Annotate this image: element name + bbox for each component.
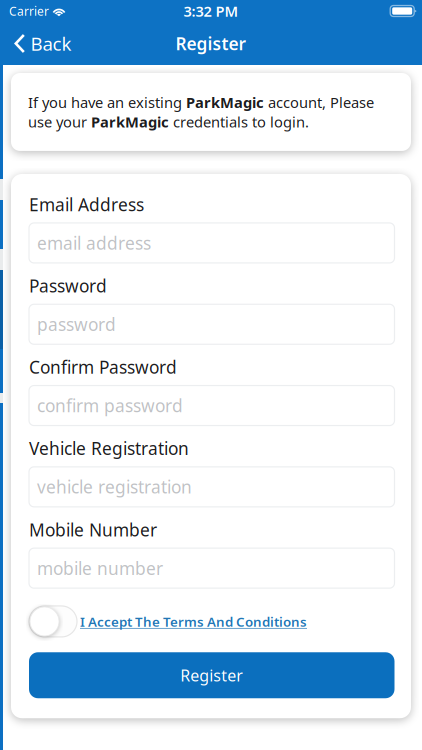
staticText: confirm password	[37, 394, 183, 417]
staticText: Email Address	[29, 193, 144, 216]
staticText: Mobile Number	[29, 518, 157, 541]
button[interactable]: Back	[0, 22, 85, 65]
staticText: I Accept The Terms And Conditions	[80, 613, 307, 630]
button[interactable]: I Accept The Terms And Conditions	[77, 606, 307, 637]
button[interactable]: Register	[29, 652, 394, 698]
staticText: Vehicle Registration	[29, 437, 189, 460]
staticText: mobile number	[37, 557, 163, 580]
staticText: Register	[175, 32, 246, 55]
button[interactable]: Accept the terms and conditions	[29, 606, 77, 637]
staticText: 3:32 PM	[183, 1, 238, 21]
staticText: vehicle registration	[37, 475, 192, 498]
staticText: password	[37, 313, 116, 336]
staticText: Register	[180, 665, 243, 686]
staticText: If you have an existing ParkMagic accoun…	[28, 92, 374, 131]
staticText: email address	[37, 231, 151, 254]
staticText: Carrier	[9, 3, 49, 19]
staticText: Password	[29, 274, 107, 297]
staticText: Back	[30, 31, 71, 56]
staticText: Confirm Password	[29, 355, 177, 378]
